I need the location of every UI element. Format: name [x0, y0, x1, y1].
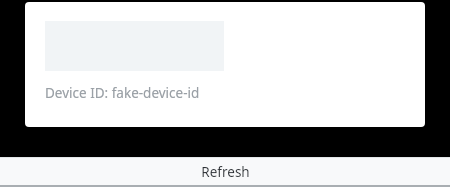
staticText: Refresh	[201, 163, 250, 181]
button[interactable]: Refresh	[0, 158, 450, 185]
staticText: Device ID: fake-device-id	[45, 84, 200, 102]
